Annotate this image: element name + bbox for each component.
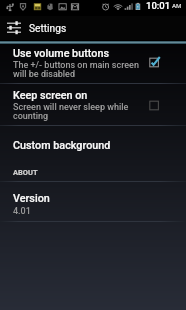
- staticText: Version: [13, 192, 50, 205]
- staticText: The +/- buttons on main screen will be d…: [13, 60, 139, 79]
- button[interactable]: Enabled: [146, 43, 182, 83]
- button[interactable]: Version: [0, 182, 186, 221]
- staticText: ABOUT: [13, 168, 38, 177]
- staticText: AM: [172, 2, 182, 9]
- staticText: Keep screen on: [13, 89, 88, 102]
- button[interactable]: Disabled: [146, 84, 182, 125]
- staticText: 4.01: [13, 206, 31, 217]
- button[interactable]: Use volume buttons: [0, 43, 186, 83]
- button[interactable]: Custom background: [0, 126, 186, 162]
- staticText: Custom background: [13, 139, 111, 152]
- staticText: Screen will never sleep while counting: [13, 102, 129, 121]
- button[interactable]: Keep screen on: [0, 84, 186, 125]
- staticText: Use volume buttons: [13, 47, 109, 60]
- staticText: 10:01: [146, 0, 171, 11]
- staticText: Settings: [29, 23, 67, 35]
- button[interactable]: App settings: [3, 16, 25, 40]
